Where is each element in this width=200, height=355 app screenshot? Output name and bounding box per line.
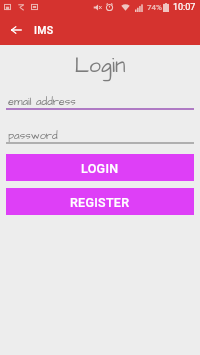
staticText: email address — [8, 94, 76, 109]
staticText: 10:07 — [173, 2, 196, 13]
staticText: LOGIN — [81, 161, 119, 176]
button[interactable]: Navigate up — [4, 14, 29, 45]
button[interactable]: REGISTER — [6, 188, 194, 215]
staticText: password — [8, 128, 58, 143]
button[interactable]: password — [6, 124, 194, 144]
staticText: Login — [0, 51, 200, 80]
button[interactable]: LOGIN — [6, 154, 194, 181]
button[interactable]: email address — [6, 90, 194, 110]
staticText: 74% — [147, 3, 162, 12]
staticText: REGISTER — [70, 195, 130, 210]
staticText: IMS — [34, 24, 54, 36]
